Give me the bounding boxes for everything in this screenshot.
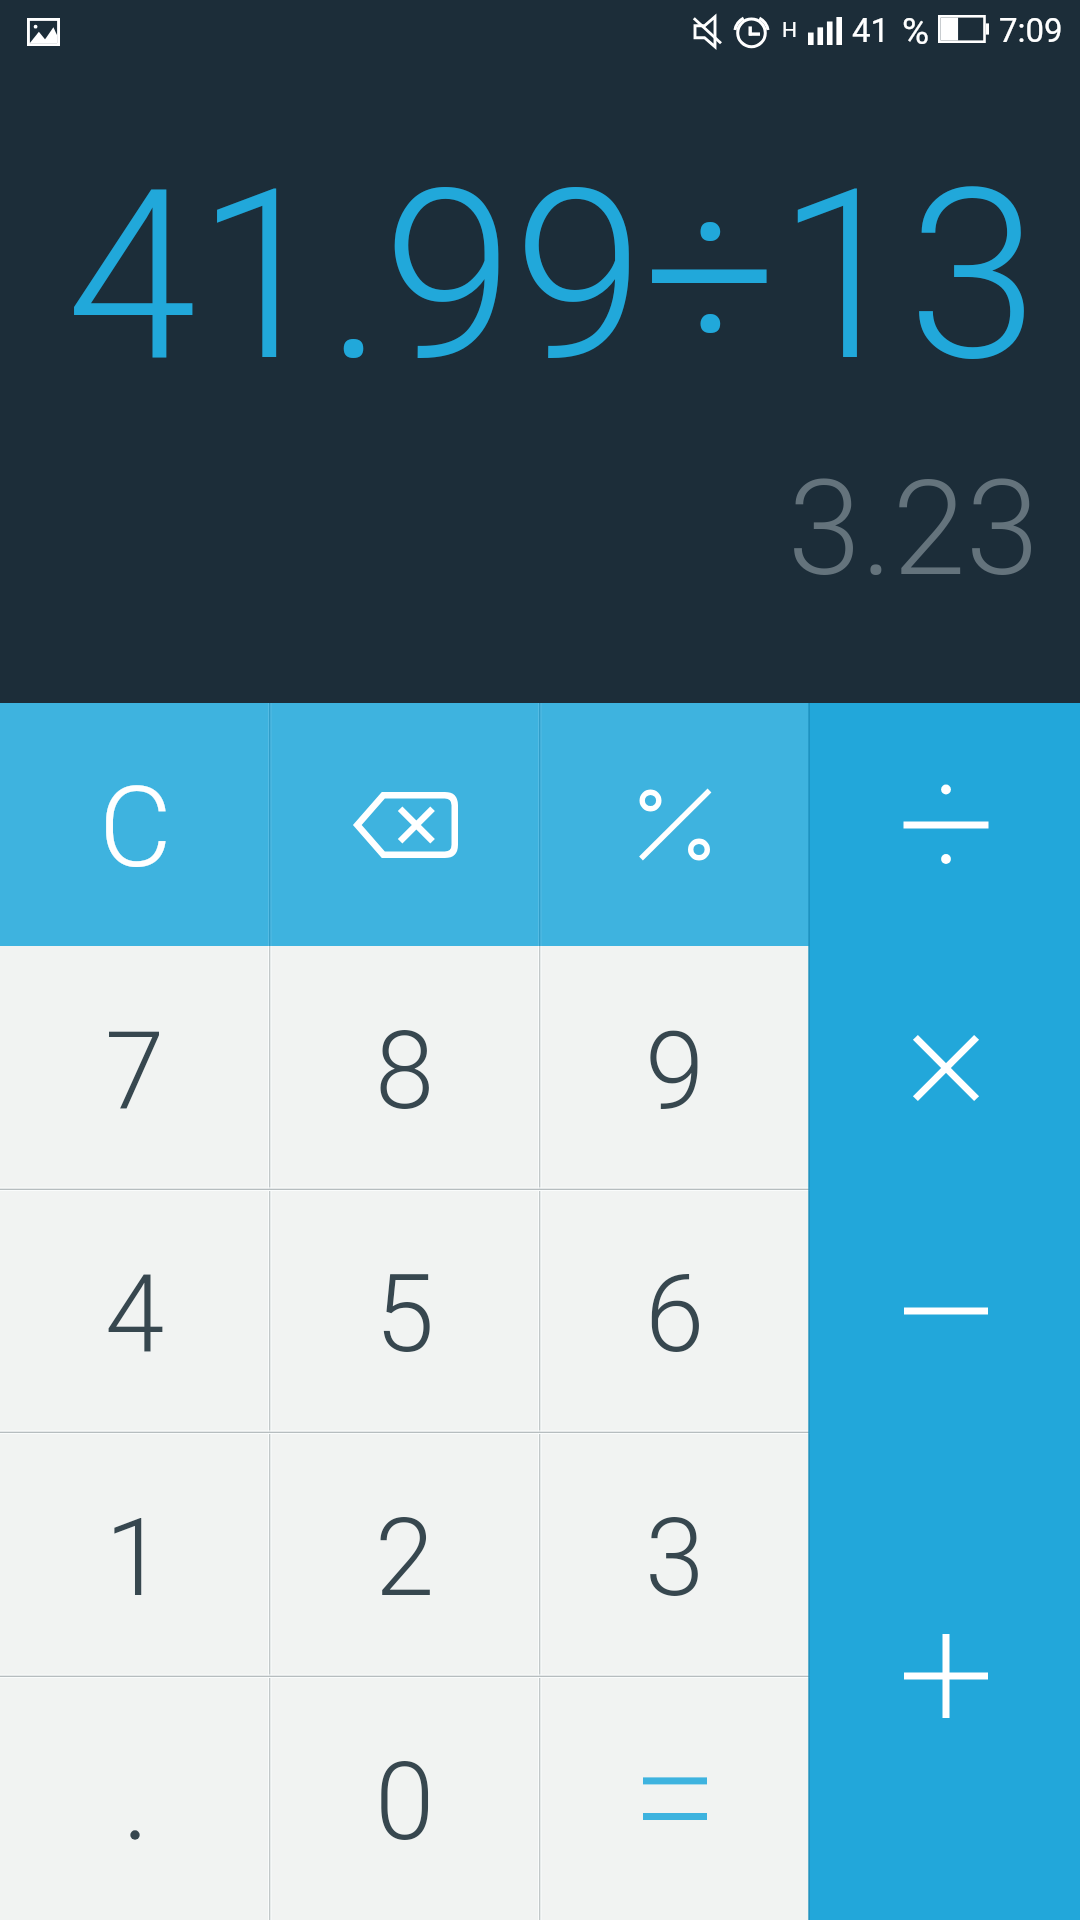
staticText: 3.23: [787, 452, 1039, 607]
staticText: 7: [105, 1009, 165, 1134]
button[interactable]: Percent: [540, 703, 810, 946]
staticText: %: [902, 10, 930, 53]
other: Screenshot: [27, 18, 60, 46]
staticText: 9: [645, 1009, 705, 1134]
staticText: H: [782, 18, 797, 43]
button[interactable]: 5: [270, 1189, 540, 1432]
staticText: 0: [375, 1740, 435, 1865]
button[interactable]: 8: [270, 946, 540, 1189]
staticText: C: [99, 762, 172, 893]
button[interactable]: Backspace: [270, 703, 540, 946]
button[interactable]: Multiply: [810, 946, 1080, 1189]
button[interactable]: 3: [540, 1432, 810, 1676]
staticText: 8: [375, 1009, 435, 1134]
staticText: 4: [105, 1252, 165, 1377]
staticText: 1: [105, 1496, 165, 1621]
button[interactable]: 9: [540, 946, 810, 1189]
button[interactable]: 7: [0, 946, 270, 1189]
button[interactable]: 6: [540, 1189, 810, 1432]
button[interactable]: Clear: [0, 703, 270, 946]
staticText: 41: [852, 11, 890, 50]
button[interactable]: 0: [270, 1676, 540, 1920]
staticText: 7:09: [999, 11, 1063, 50]
staticText: 3: [645, 1496, 705, 1621]
button[interactable]: Add: [810, 1432, 1080, 1920]
button[interactable]: 4: [0, 1189, 270, 1432]
staticText: 41.99÷13: [66, 139, 1038, 414]
staticText: 5: [375, 1252, 435, 1377]
staticText: 2: [375, 1496, 435, 1621]
button[interactable]: Divide: [810, 703, 1080, 946]
button[interactable]: Subtract: [810, 1189, 1080, 1432]
button[interactable]: 1: [0, 1432, 270, 1676]
button[interactable]: Decimal point: [0, 1676, 270, 1920]
staticText: 6: [645, 1252, 705, 1377]
button[interactable]: Equals: [540, 1676, 810, 1920]
button[interactable]: 2: [270, 1432, 540, 1676]
